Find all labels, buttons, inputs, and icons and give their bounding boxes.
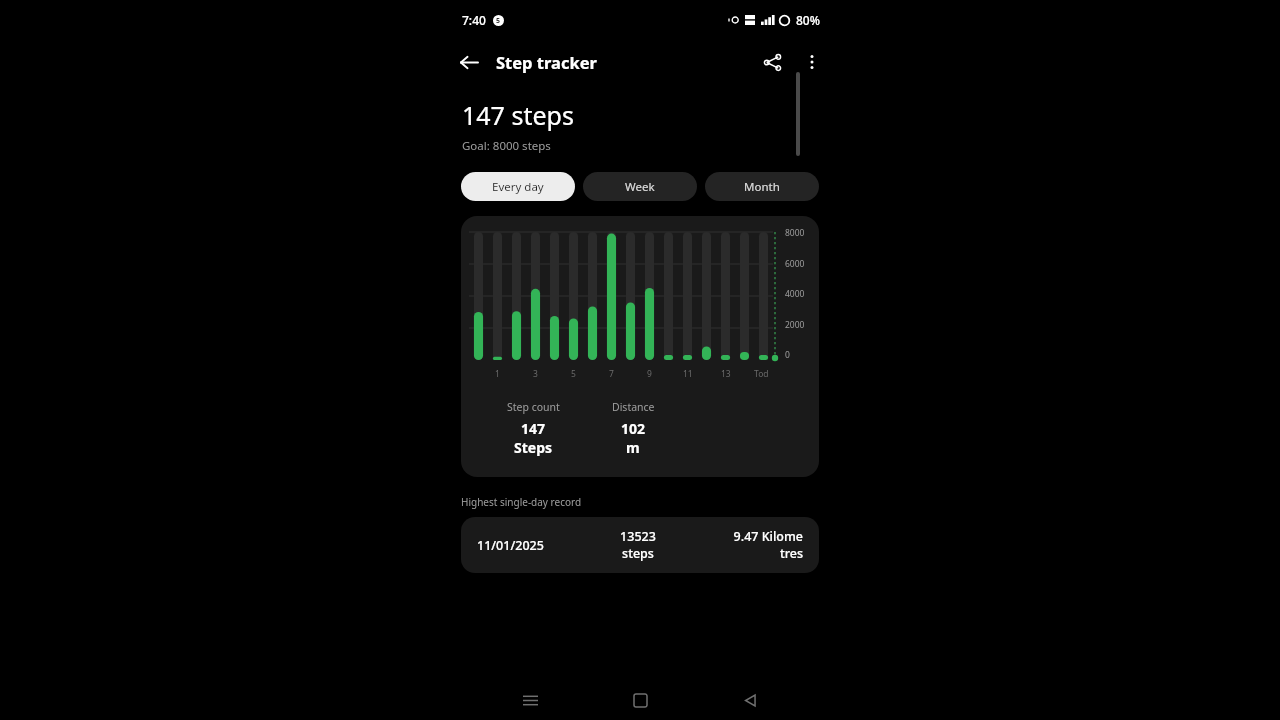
staticText: 5	[496, 16, 501, 26]
staticText: Highest single-day record	[461, 495, 582, 509]
staticText: 7	[609, 368, 614, 380]
staticText: 102	[621, 419, 646, 438]
staticText: Step count	[507, 400, 560, 414]
staticText: 11/01/2025	[477, 537, 544, 554]
button[interactable]: More options	[792, 42, 832, 82]
staticText: Week	[625, 179, 655, 195]
button[interactable]: Recents	[510, 680, 550, 720]
staticText: 5	[571, 368, 576, 380]
staticText: 9	[647, 368, 652, 380]
staticText: 1	[495, 368, 500, 380]
button[interactable]: Every day	[461, 172, 575, 201]
staticText: 11	[683, 368, 693, 380]
staticText: m	[626, 438, 640, 457]
staticText: 6000	[785, 258, 805, 270]
button[interactable]: Back	[730, 680, 770, 720]
staticText: 3	[533, 368, 538, 380]
button[interactable]: Home	[620, 680, 660, 720]
button[interactable]: Share	[752, 42, 792, 82]
staticText: Distance	[612, 400, 655, 414]
staticText: Goal: 8000 steps	[462, 138, 551, 154]
button[interactable]: 11/01/2025	[461, 517, 819, 573]
staticText: 0	[785, 349, 790, 361]
button[interactable]: Back	[448, 42, 488, 82]
staticText: 13523 steps	[620, 528, 656, 562]
staticText: Every day	[492, 179, 544, 195]
staticText: Today	[754, 368, 773, 380]
staticText: 147	[521, 419, 546, 438]
staticText: 9.47 Kilome tres	[733, 528, 803, 562]
button[interactable]: Month	[705, 172, 819, 201]
staticText: 7:40	[462, 12, 486, 28]
staticText: 8000	[785, 227, 805, 239]
staticText: 13	[721, 368, 731, 380]
button[interactable]: Week	[583, 172, 697, 201]
staticText: 80%	[796, 12, 820, 28]
staticText: 2000	[785, 319, 805, 331]
staticText: 147 steps	[462, 98, 574, 132]
staticText: Step tracker	[496, 51, 597, 73]
staticText: 4000	[785, 288, 805, 300]
staticText: Steps	[514, 438, 553, 457]
staticText: Month	[744, 179, 780, 195]
